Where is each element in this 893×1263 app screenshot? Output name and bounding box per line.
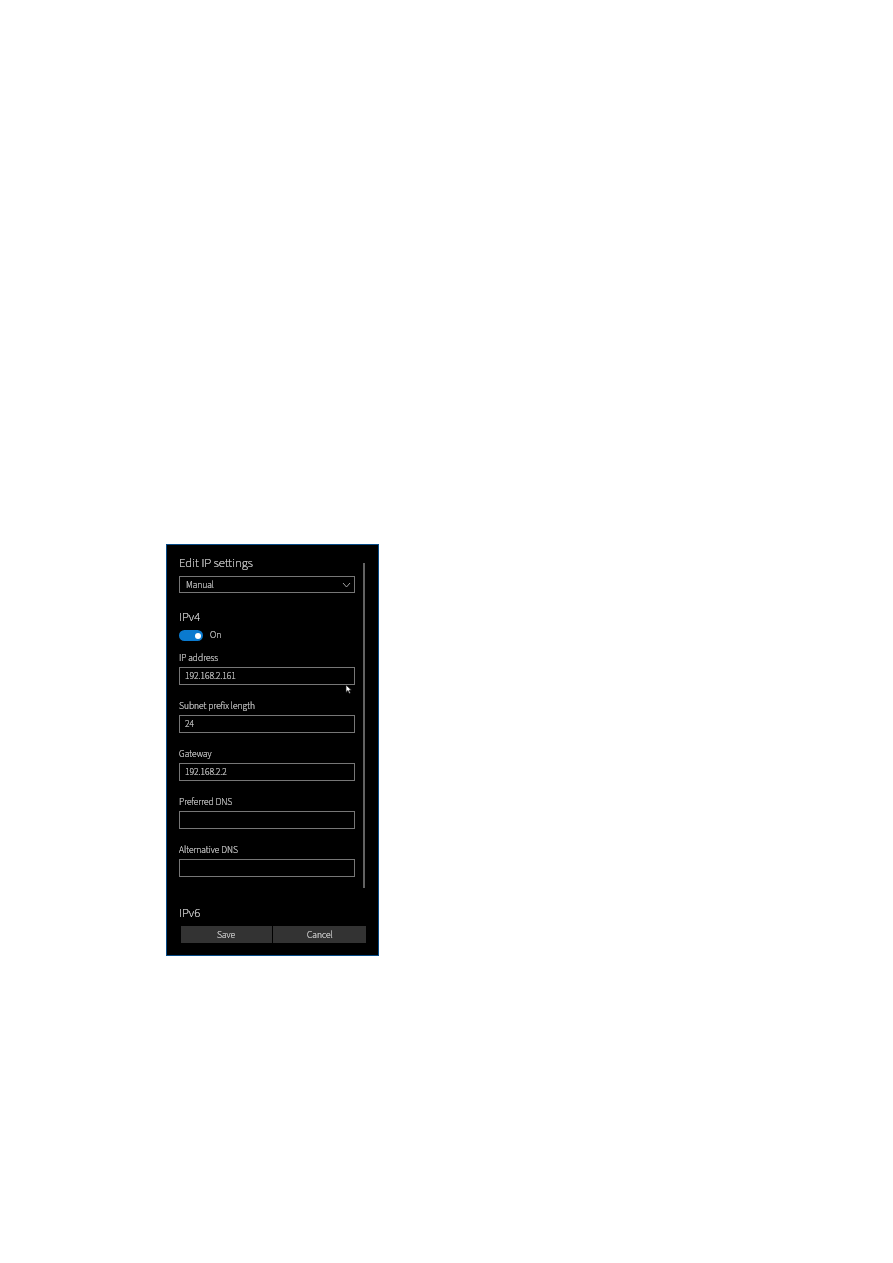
staticText: 192.168.2.2 (185, 765, 227, 779)
staticText: 192.168.2.161 (185, 669, 236, 683)
other: Expand (343, 583, 350, 587)
button[interactable] (179, 811, 355, 829)
staticText: Alternative DNS (179, 843, 238, 857)
staticText: Gateway (179, 747, 212, 761)
button[interactable] (179, 859, 355, 877)
button[interactable]: Cancel (273, 926, 366, 943)
staticText: Cancel (307, 928, 333, 942)
staticText: Manual (186, 578, 215, 592)
other: IPv4 enabled (179, 630, 203, 641)
staticText: Save (217, 928, 236, 942)
staticText: IPv4 (179, 608, 201, 626)
button[interactable]: 192.168.2.2 (179, 763, 355, 781)
staticText: IP address (179, 651, 219, 665)
staticText: On (210, 628, 222, 642)
button[interactable]: 24 (179, 715, 355, 733)
button[interactable]: Manual (179, 576, 355, 593)
staticText: 24 (185, 717, 194, 731)
staticText: Subnet prefix length (179, 699, 255, 713)
staticText: Edit IP settings (179, 554, 253, 572)
staticText: Preferred DNS (179, 795, 233, 809)
button[interactable]: 192.168.2.161 (179, 667, 355, 685)
staticText: IPv6 (179, 904, 201, 922)
button[interactable]: IPv4 enabled (179, 628, 222, 642)
button[interactable]: Save (181, 926, 272, 943)
